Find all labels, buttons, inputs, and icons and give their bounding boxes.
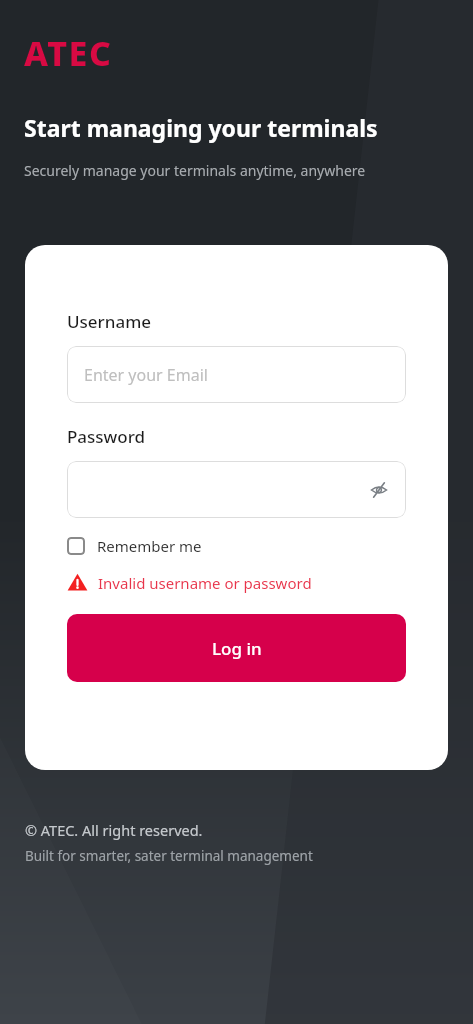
staticText: Log in <box>212 637 262 660</box>
button[interactable]: Remember me <box>67 536 202 556</box>
staticText: Start managing your terminals <box>24 112 378 143</box>
staticText: Securely manage your terminals anytime, … <box>24 161 366 180</box>
staticText: Username <box>67 310 151 333</box>
staticText: Built for smarter, sater terminal manage… <box>25 847 313 865</box>
button[interactable]: Show password <box>366 477 392 503</box>
button[interactable]: Log in <box>67 614 406 682</box>
staticText: Enter your Email <box>84 364 208 386</box>
staticText: Invalid username or password <box>98 573 312 593</box>
button[interactable]: Enter your Email <box>67 346 406 403</box>
staticText: Remember me <box>97 536 202 556</box>
staticText: ATEC <box>24 30 113 76</box>
button[interactable]: Show password <box>67 461 406 518</box>
staticText: Password <box>67 425 146 448</box>
staticText: © ATEC. All right reserved. <box>25 820 203 840</box>
